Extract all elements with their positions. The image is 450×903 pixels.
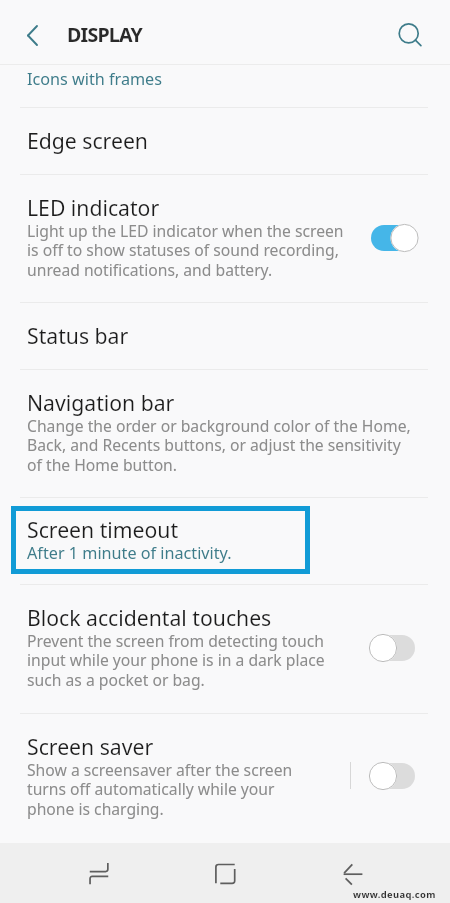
staticText: Show a screensaver after the screen turn… (27, 759, 293, 820)
staticText: Edge screen (27, 126, 148, 155)
staticText: Status bar (27, 321, 129, 350)
button[interactable]: Search (388, 13, 432, 57)
button[interactable]: Edge screen (0, 108, 450, 174)
staticText: Screen saver (27, 732, 154, 761)
staticText: www.deuaq.com (353, 888, 436, 901)
button[interactable]: Back (329, 849, 377, 897)
button[interactable]: LED indicator (0, 175, 450, 302)
button[interactable]: Navigation bar (0, 370, 450, 497)
button[interactable]: Screen timeout (0, 498, 450, 584)
staticText: Navigation bar (27, 388, 175, 417)
button[interactable]: Screen saver (0, 714, 450, 843)
button[interactable]: Screen saver (370, 761, 418, 791)
staticText: After 1 minute of inactivity. (27, 542, 232, 564)
staticText: Screen timeout (27, 515, 179, 544)
staticText: Change the order or background color of … (27, 415, 411, 476)
button[interactable]: Block accidental touches (370, 633, 418, 663)
staticText: DISPLAY (67, 21, 143, 48)
staticText: Prevent the screen from detecting touch … (27, 630, 325, 691)
button[interactable]: Recents (75, 849, 123, 897)
button[interactable]: Block accidental touches (0, 585, 450, 713)
button[interactable]: Status bar (0, 303, 450, 369)
staticText: Icons with frames (27, 68, 163, 90)
staticText: Light up the LED indicator when the scre… (27, 220, 344, 281)
button[interactable]: Navigate up (10, 13, 55, 58)
button[interactable]: Icons with frames (0, 65, 450, 107)
staticText: Block accidental touches (27, 603, 272, 632)
button[interactable]: LED indicator (370, 223, 418, 253)
button[interactable]: Home (201, 849, 249, 897)
staticText: LED indicator (27, 193, 160, 222)
